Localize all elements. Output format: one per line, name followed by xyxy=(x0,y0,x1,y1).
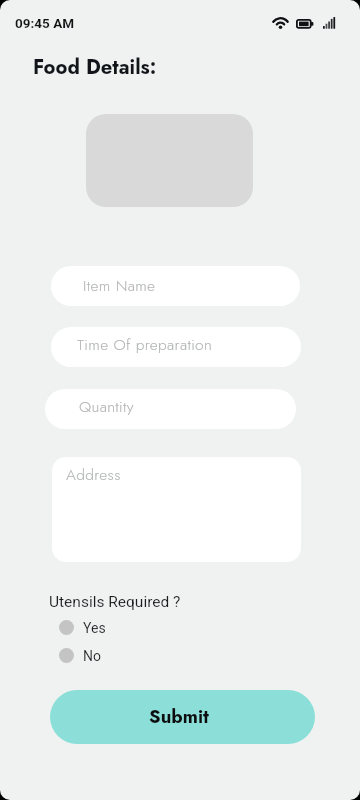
button[interactable]: Add food photo xyxy=(86,114,253,207)
staticText: Submit xyxy=(149,703,209,730)
button[interactable]: Item Name xyxy=(51,266,300,306)
button[interactable]: No xyxy=(59,647,101,664)
button[interactable]: Submit xyxy=(50,690,315,744)
button[interactable]: Quantity xyxy=(45,389,296,429)
staticText: Yes xyxy=(83,620,106,636)
staticText: Quantity xyxy=(79,395,134,417)
button[interactable]: Yes xyxy=(59,619,106,636)
button[interactable]: Address xyxy=(52,457,301,562)
staticText: Address xyxy=(66,463,121,485)
button[interactable]: Time Of preparation xyxy=(51,327,301,367)
staticText: Item Name xyxy=(83,274,156,296)
staticText: No xyxy=(83,648,101,664)
staticText: Food Details: xyxy=(33,52,157,81)
other: Signal strength xyxy=(323,16,337,30)
other: Wi-Fi xyxy=(271,15,290,30)
staticText: Time Of preparation xyxy=(77,333,213,355)
other: Battery xyxy=(296,18,315,30)
staticText: Utensils Required ? xyxy=(49,593,181,611)
staticText: 09:45 AM xyxy=(15,15,75,31)
